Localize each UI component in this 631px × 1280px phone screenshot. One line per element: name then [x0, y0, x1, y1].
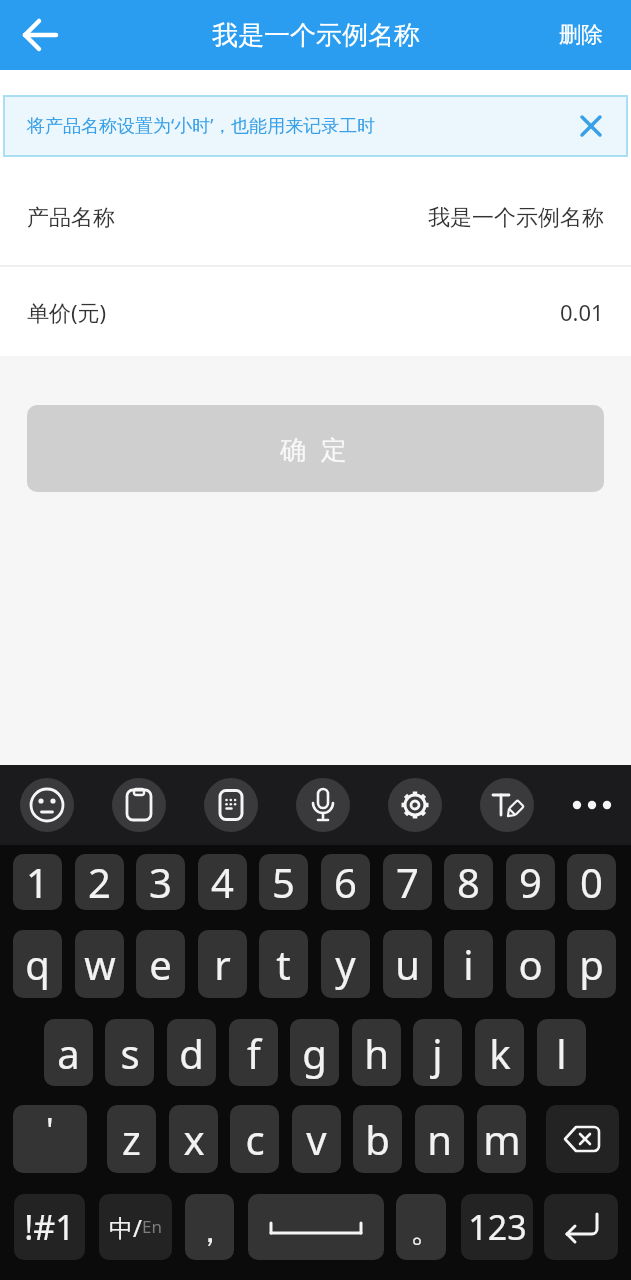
staticText: v: [306, 1112, 327, 1166]
staticText: 8: [457, 855, 480, 909]
staticText: i: [463, 937, 474, 991]
staticText: 我是一个示例名称: [212, 19, 420, 52]
button[interactable]: 123: [461, 1194, 533, 1260]
staticText: !#1: [24, 1204, 75, 1250]
staticText: l: [556, 1026, 567, 1080]
button[interactable]: 单价(元): [0, 267, 631, 356]
button[interactable]: ': [13, 1105, 87, 1173]
staticText: ，: [194, 1211, 226, 1251]
button[interactable]: 7: [383, 854, 432, 910]
button[interactable]: [480, 778, 534, 832]
button[interactable]: n: [415, 1105, 464, 1173]
button[interactable]: v: [292, 1105, 341, 1173]
button[interactable]: 删除: [559, 21, 603, 49]
staticText: u: [395, 937, 420, 991]
staticText: 123: [468, 1204, 527, 1250]
button[interactable]: [204, 778, 258, 832]
staticText: f: [247, 1026, 261, 1080]
staticText: 单价(元): [27, 297, 107, 327]
staticText: 我是一个示例名称: [428, 204, 604, 232]
button[interactable]: 0: [567, 854, 616, 910]
button[interactable]: u: [383, 930, 432, 998]
button[interactable]: 6: [321, 854, 370, 910]
button[interactable]: f: [229, 1019, 278, 1086]
staticText: 9: [519, 855, 542, 909]
staticText: ': [46, 1107, 54, 1153]
staticText: 删除: [559, 21, 603, 49]
button[interactable]: q: [13, 930, 62, 998]
staticText: g: [302, 1026, 327, 1080]
button[interactable]: !#1: [14, 1194, 85, 1260]
button[interactable]: l: [537, 1019, 586, 1086]
staticText: 6: [334, 855, 357, 909]
button[interactable]: ，: [185, 1194, 234, 1260]
staticText: z: [122, 1112, 141, 1166]
button[interactable]: z: [107, 1105, 156, 1173]
button[interactable]: y: [321, 930, 370, 998]
button[interactable]: [112, 778, 166, 832]
button[interactable]: a: [44, 1019, 93, 1086]
button[interactable]: [576, 111, 606, 141]
staticText: a: [57, 1026, 80, 1080]
button[interactable]: w: [75, 930, 124, 998]
button[interactable]: [16, 11, 64, 59]
button[interactable]: 中/: [99, 1194, 172, 1260]
button[interactable]: h: [352, 1019, 401, 1086]
button[interactable]: [388, 778, 442, 832]
button[interactable]: r: [198, 930, 247, 998]
button[interactable]: [20, 778, 74, 832]
staticText: 0.01: [560, 297, 604, 327]
staticText: 7: [396, 855, 419, 909]
button[interactable]: x: [169, 1105, 218, 1173]
button[interactable]: [296, 778, 350, 832]
button[interactable]: 2: [75, 854, 124, 910]
staticText: y: [335, 937, 356, 991]
button[interactable]: 4: [198, 854, 247, 910]
button[interactable]: t: [259, 930, 308, 998]
button[interactable]: 9: [506, 854, 555, 910]
staticText: o: [518, 937, 543, 991]
button[interactable]: g: [290, 1019, 339, 1086]
staticText: 5: [272, 855, 295, 909]
staticText: 2: [88, 855, 111, 909]
button[interactable]: 1: [13, 854, 62, 910]
staticText: q: [25, 937, 50, 991]
staticText: j: [432, 1026, 443, 1080]
staticText: d: [179, 1026, 204, 1080]
button[interactable]: 确 定: [27, 405, 604, 492]
staticText: 。: [410, 1208, 444, 1251]
staticText: s: [120, 1026, 140, 1080]
button[interactable]: 8: [444, 854, 493, 910]
staticText: p: [579, 937, 604, 991]
button[interactable]: 。: [396, 1194, 446, 1260]
button[interactable]: e: [136, 930, 185, 998]
staticText: 1: [26, 855, 49, 909]
button[interactable]: j: [413, 1019, 462, 1086]
button[interactable]: 产品名称: [0, 157, 631, 265]
button[interactable]: [546, 1105, 619, 1173]
button[interactable]: i: [444, 930, 493, 998]
staticText: h: [364, 1026, 389, 1080]
staticText: 将产品名称设置为‘小时’，也能用来记录工时: [27, 113, 376, 138]
button[interactable]: c: [230, 1105, 279, 1173]
button[interactable]: p: [567, 930, 616, 998]
button[interactable]: s: [105, 1019, 154, 1086]
staticText: En: [142, 1215, 162, 1238]
staticText: 3: [149, 855, 172, 909]
staticText: 中/: [109, 1211, 142, 1244]
button[interactable]: [565, 778, 619, 832]
button[interactable]: b: [353, 1105, 402, 1173]
button[interactable]: k: [475, 1019, 524, 1086]
button[interactable]: 5: [259, 854, 308, 910]
button[interactable]: 3: [136, 854, 185, 910]
staticText: 产品名称: [27, 204, 115, 232]
staticText: k: [489, 1026, 511, 1080]
button[interactable]: o: [506, 930, 555, 998]
staticText: x: [183, 1112, 205, 1166]
button[interactable]: m: [477, 1105, 526, 1173]
staticText: t: [276, 937, 291, 991]
button[interactable]: [248, 1194, 384, 1260]
button[interactable]: d: [167, 1019, 216, 1086]
staticText: e: [149, 937, 172, 991]
button[interactable]: [544, 1194, 618, 1260]
